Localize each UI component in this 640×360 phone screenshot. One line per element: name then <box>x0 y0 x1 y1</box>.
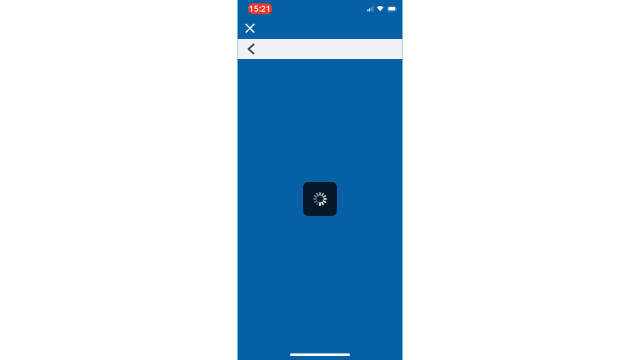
button[interactable]: Back <box>243 39 259 58</box>
staticText: 15:21 <box>249 3 271 14</box>
button[interactable]: Close <box>242 19 258 37</box>
